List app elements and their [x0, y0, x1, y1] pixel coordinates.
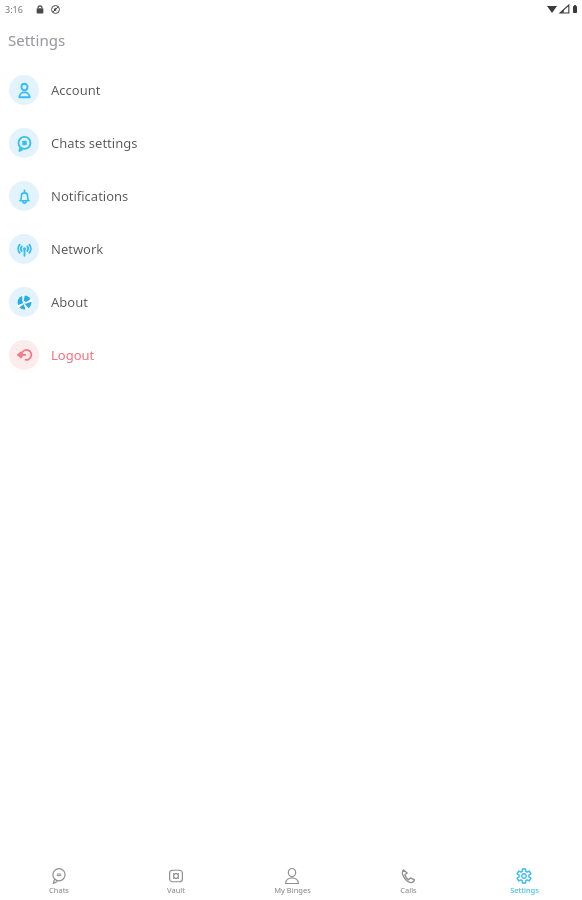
staticText: Chats: [49, 885, 69, 895]
staticText: Notifications: [51, 187, 129, 205]
staticText: Logout: [51, 346, 95, 364]
button[interactable]: Vault: [117, 862, 234, 900]
staticText: My Binges: [274, 885, 311, 895]
staticText: Calls: [400, 885, 417, 895]
button[interactable]: Account: [0, 63, 582, 116]
staticText: Settings: [8, 30, 66, 50]
button[interactable]: Notifications: [0, 169, 582, 222]
staticText: Chats settings: [51, 134, 138, 152]
button[interactable]: My Binges: [234, 862, 350, 900]
button[interactable]: Chats: [0, 862, 117, 900]
button[interactable]: Network: [0, 222, 582, 275]
staticText: Vault: [167, 885, 185, 895]
staticText: About: [51, 293, 88, 311]
button[interactable]: Settings: [466, 862, 582, 900]
staticText: Settings: [510, 885, 539, 895]
button[interactable]: Logout: [0, 328, 582, 381]
button[interactable]: About: [0, 275, 582, 328]
staticText: Account: [51, 81, 101, 99]
staticText: 3:16: [5, 3, 23, 15]
button[interactable]: Chats settings: [0, 116, 582, 169]
button[interactable]: Calls: [350, 862, 466, 900]
staticText: Network: [51, 240, 104, 258]
